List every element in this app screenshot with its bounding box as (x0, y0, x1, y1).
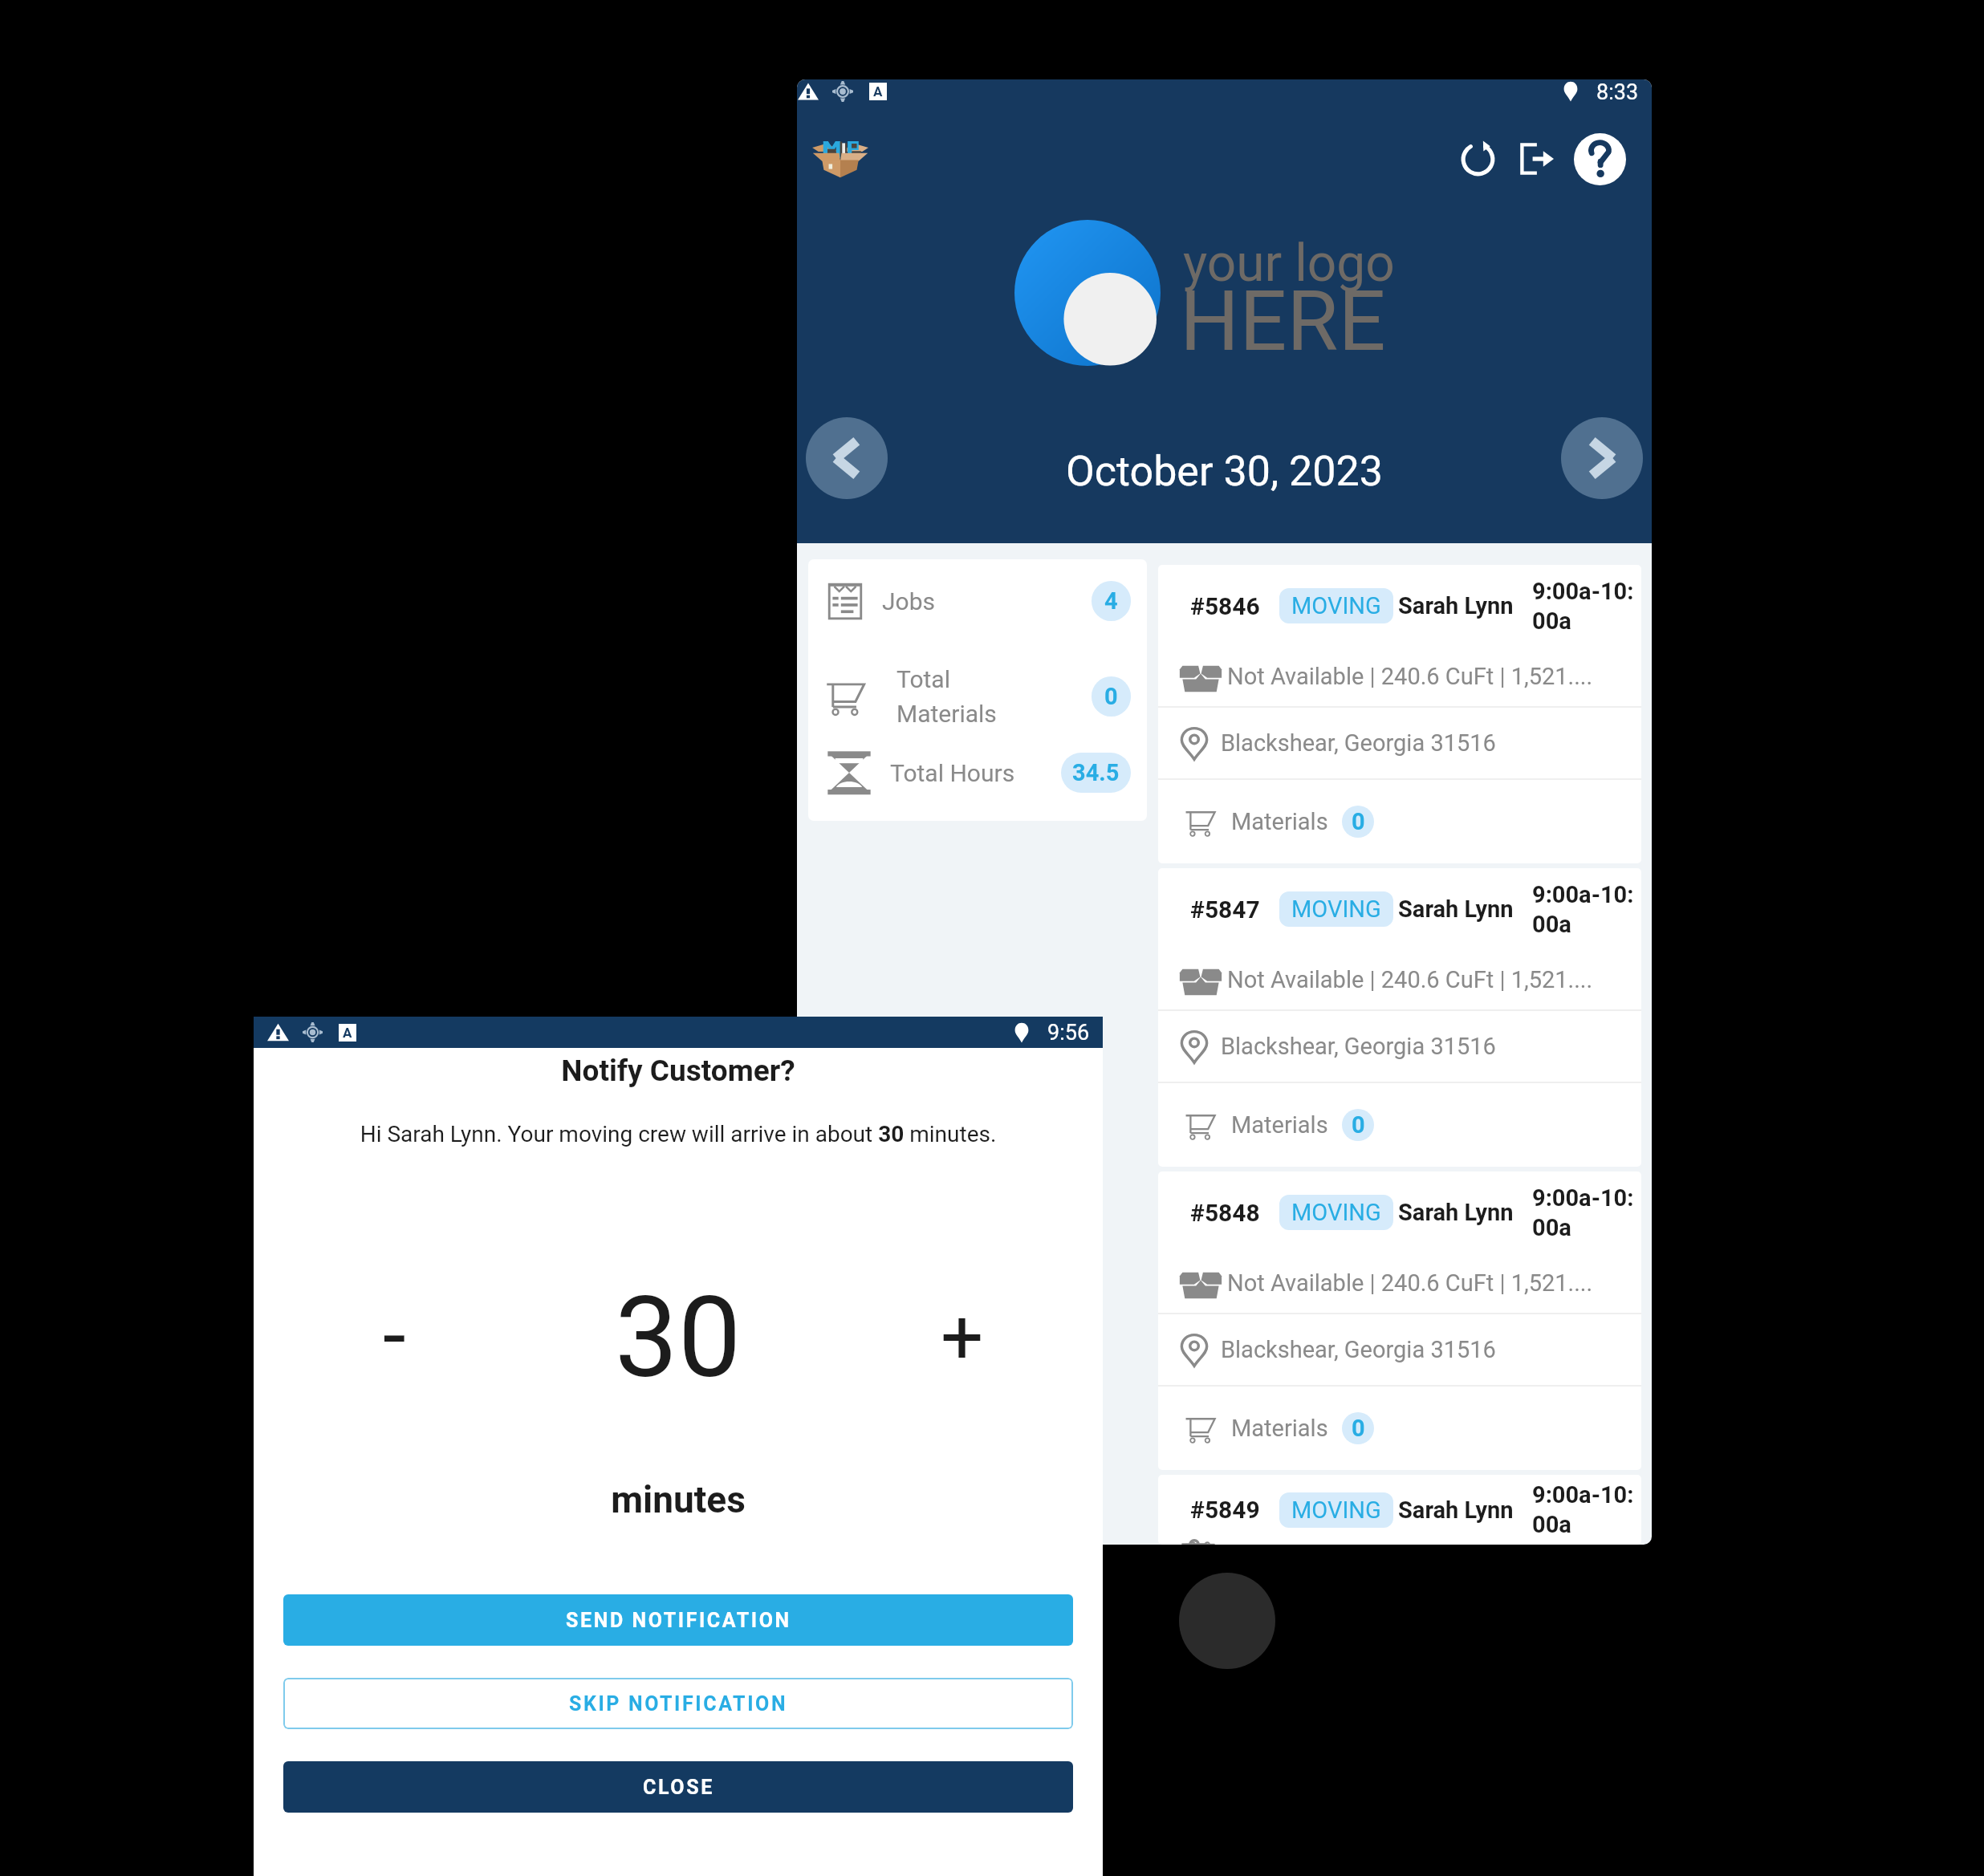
staticText: Materials (1231, 1415, 1328, 1442)
staticText: #5847 (1190, 895, 1260, 924)
button[interactable]: #5846 (1158, 565, 1641, 863)
staticText: Sarah Lynn (1398, 895, 1514, 923)
staticText: #5849 (1190, 1496, 1260, 1524)
staticText: A (343, 1025, 352, 1041)
button[interactable]: Increase (918, 1293, 1006, 1382)
staticText: Total Hours (890, 759, 1015, 787)
staticText: Not Available | 240.6 CuFt | 1,521.... (1227, 663, 1593, 690)
staticText: #5848 (1190, 1199, 1260, 1227)
button[interactable]: Next day (1561, 417, 1643, 499)
button[interactable]: #5849 (1158, 1475, 1641, 1545)
staticText: Blackshear, Georgia 31516 (1221, 729, 1496, 757)
button[interactable]: Jobs (824, 580, 1131, 622)
staticText: #5846 (1190, 592, 1260, 620)
staticText: 0 (1352, 808, 1365, 835)
staticText: 9:00a-10: 00a (1532, 1184, 1639, 1241)
staticText: Hi Sarah Lynn. Your moving crew will arr… (254, 1121, 1103, 1147)
staticText: - (383, 1287, 406, 1375)
button[interactable]: Total Materials (824, 661, 1131, 732)
staticText: minutes (254, 1478, 1103, 1521)
staticText: 9:00a-10: 00a (1532, 881, 1639, 938)
staticText: 9:00a-10: 00a (1532, 1481, 1639, 1538)
staticText: 9:00a-10: 00a (1532, 578, 1639, 635)
staticText: 0 (1352, 1415, 1365, 1442)
staticText: your logo (1183, 233, 1395, 294)
staticText: Total Materials (896, 665, 997, 728)
staticText: 0 (1104, 683, 1118, 710)
button[interactable]: MiP home (805, 121, 876, 187)
button[interactable]: #5848 (1158, 1171, 1641, 1470)
staticText: 9:56 (1047, 1020, 1090, 1046)
staticText: + (941, 1293, 984, 1382)
staticText: Not Available | 240.6 CuFt | 1,521.... (1227, 966, 1593, 993)
staticText: SEND NOTIFICATION (566, 1609, 791, 1632)
staticText: Materials (1231, 808, 1328, 835)
button[interactable]: Total Hours (824, 748, 1131, 798)
staticText: October 30, 2023 (1066, 447, 1383, 496)
button[interactable]: #5847 (1158, 868, 1641, 1167)
staticText: Jobs (882, 587, 935, 615)
button[interactable]: Refresh (1448, 124, 1507, 193)
staticText: HERE (1180, 273, 1386, 371)
staticText: Blackshear, Georgia 31516 (1221, 1033, 1496, 1060)
staticText: 0 (1352, 1111, 1365, 1139)
staticText: Sarah Lynn (1398, 592, 1514, 619)
button[interactable]: Decrease (350, 1287, 438, 1375)
button[interactable]: SKIP NOTIFICATION (283, 1678, 1073, 1729)
button[interactable]: SEND NOTIFICATION (283, 1594, 1073, 1646)
staticText: Notify Customer? (254, 1054, 1103, 1088)
staticText: Sarah Lynn (1398, 1199, 1514, 1226)
staticText: 30 (615, 1272, 742, 1403)
staticText: Not Available | 240.6 CuFt | 1,521.... (1227, 1269, 1593, 1297)
staticText: A (873, 83, 883, 99)
staticText: MOVING (1291, 895, 1381, 923)
staticText: MOVING (1291, 1496, 1381, 1524)
staticText: 8:33 (1596, 79, 1639, 103)
staticText: SKIP NOTIFICATION (569, 1692, 788, 1716)
staticText: Sarah Lynn (1398, 1496, 1514, 1524)
button[interactable]: Log out (1506, 124, 1566, 193)
staticText: 4 (1104, 587, 1118, 615)
staticText: MOVING (1291, 592, 1381, 619)
button[interactable]: Previous day (806, 417, 888, 499)
staticText: Materials (1231, 1111, 1328, 1139)
button[interactable]: Help (1566, 124, 1633, 193)
staticText: MOVING (1291, 1199, 1381, 1226)
staticText: CLOSE (643, 1776, 714, 1799)
button[interactable]: CLOSE (283, 1761, 1073, 1813)
staticText: Blackshear, Georgia 31516 (1221, 1336, 1496, 1363)
staticText: 34.5 (1072, 759, 1120, 786)
